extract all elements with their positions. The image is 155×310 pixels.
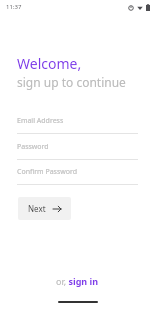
staticText: 11:37 <box>6 3 22 11</box>
staticText: Confirm Password <box>17 167 78 177</box>
button[interactable]: Confirm Password <box>17 167 138 185</box>
button[interactable]: Password <box>17 142 138 160</box>
staticText: Email Address <box>17 116 64 126</box>
staticText: or, sign in <box>56 275 99 287</box>
staticText: Welcome, <box>17 54 82 73</box>
button[interactable]: or, sign in <box>50 272 105 290</box>
staticText: Next <box>28 203 46 214</box>
button[interactable]: Email Address <box>17 116 138 134</box>
staticText: sign up to continue <box>17 74 126 90</box>
button[interactable]: Next <box>18 197 71 220</box>
staticText: Password <box>17 142 49 152</box>
